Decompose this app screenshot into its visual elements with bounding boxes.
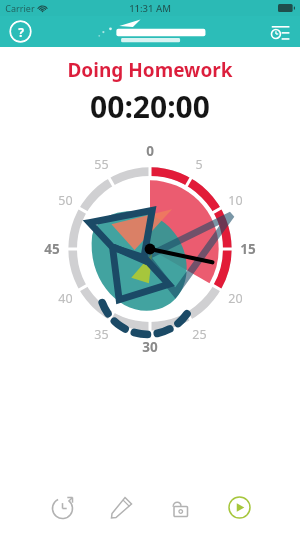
staticText: 00:20:00 <box>90 86 210 127</box>
button[interactable]: Unlock <box>160 487 200 527</box>
button[interactable]: Reset timer <box>42 487 82 527</box>
button[interactable]: Timer list <box>267 19 293 45</box>
staticText: 45 <box>44 240 60 258</box>
button[interactable]: Help <box>9 20 32 43</box>
staticText: 15 <box>240 240 256 258</box>
staticText: 30 <box>142 338 158 356</box>
staticText: Carrier <box>5 2 35 14</box>
staticText: 40 <box>58 290 73 307</box>
staticText: Doing Homework <box>67 57 233 83</box>
button[interactable]: Start <box>219 487 259 527</box>
staticText: 20 <box>228 290 243 307</box>
staticText: ? <box>18 24 24 40</box>
staticText: 0 <box>146 142 154 160</box>
staticText: 5 <box>195 156 203 173</box>
staticText: 10 <box>228 192 243 209</box>
staticText: 25 <box>192 326 207 343</box>
staticText: 35 <box>94 326 109 343</box>
staticText: 11:31 AM <box>129 2 171 15</box>
staticText: 55 <box>94 156 109 173</box>
button[interactable]: Edit <box>101 487 141 527</box>
staticText: 50 <box>58 192 73 209</box>
